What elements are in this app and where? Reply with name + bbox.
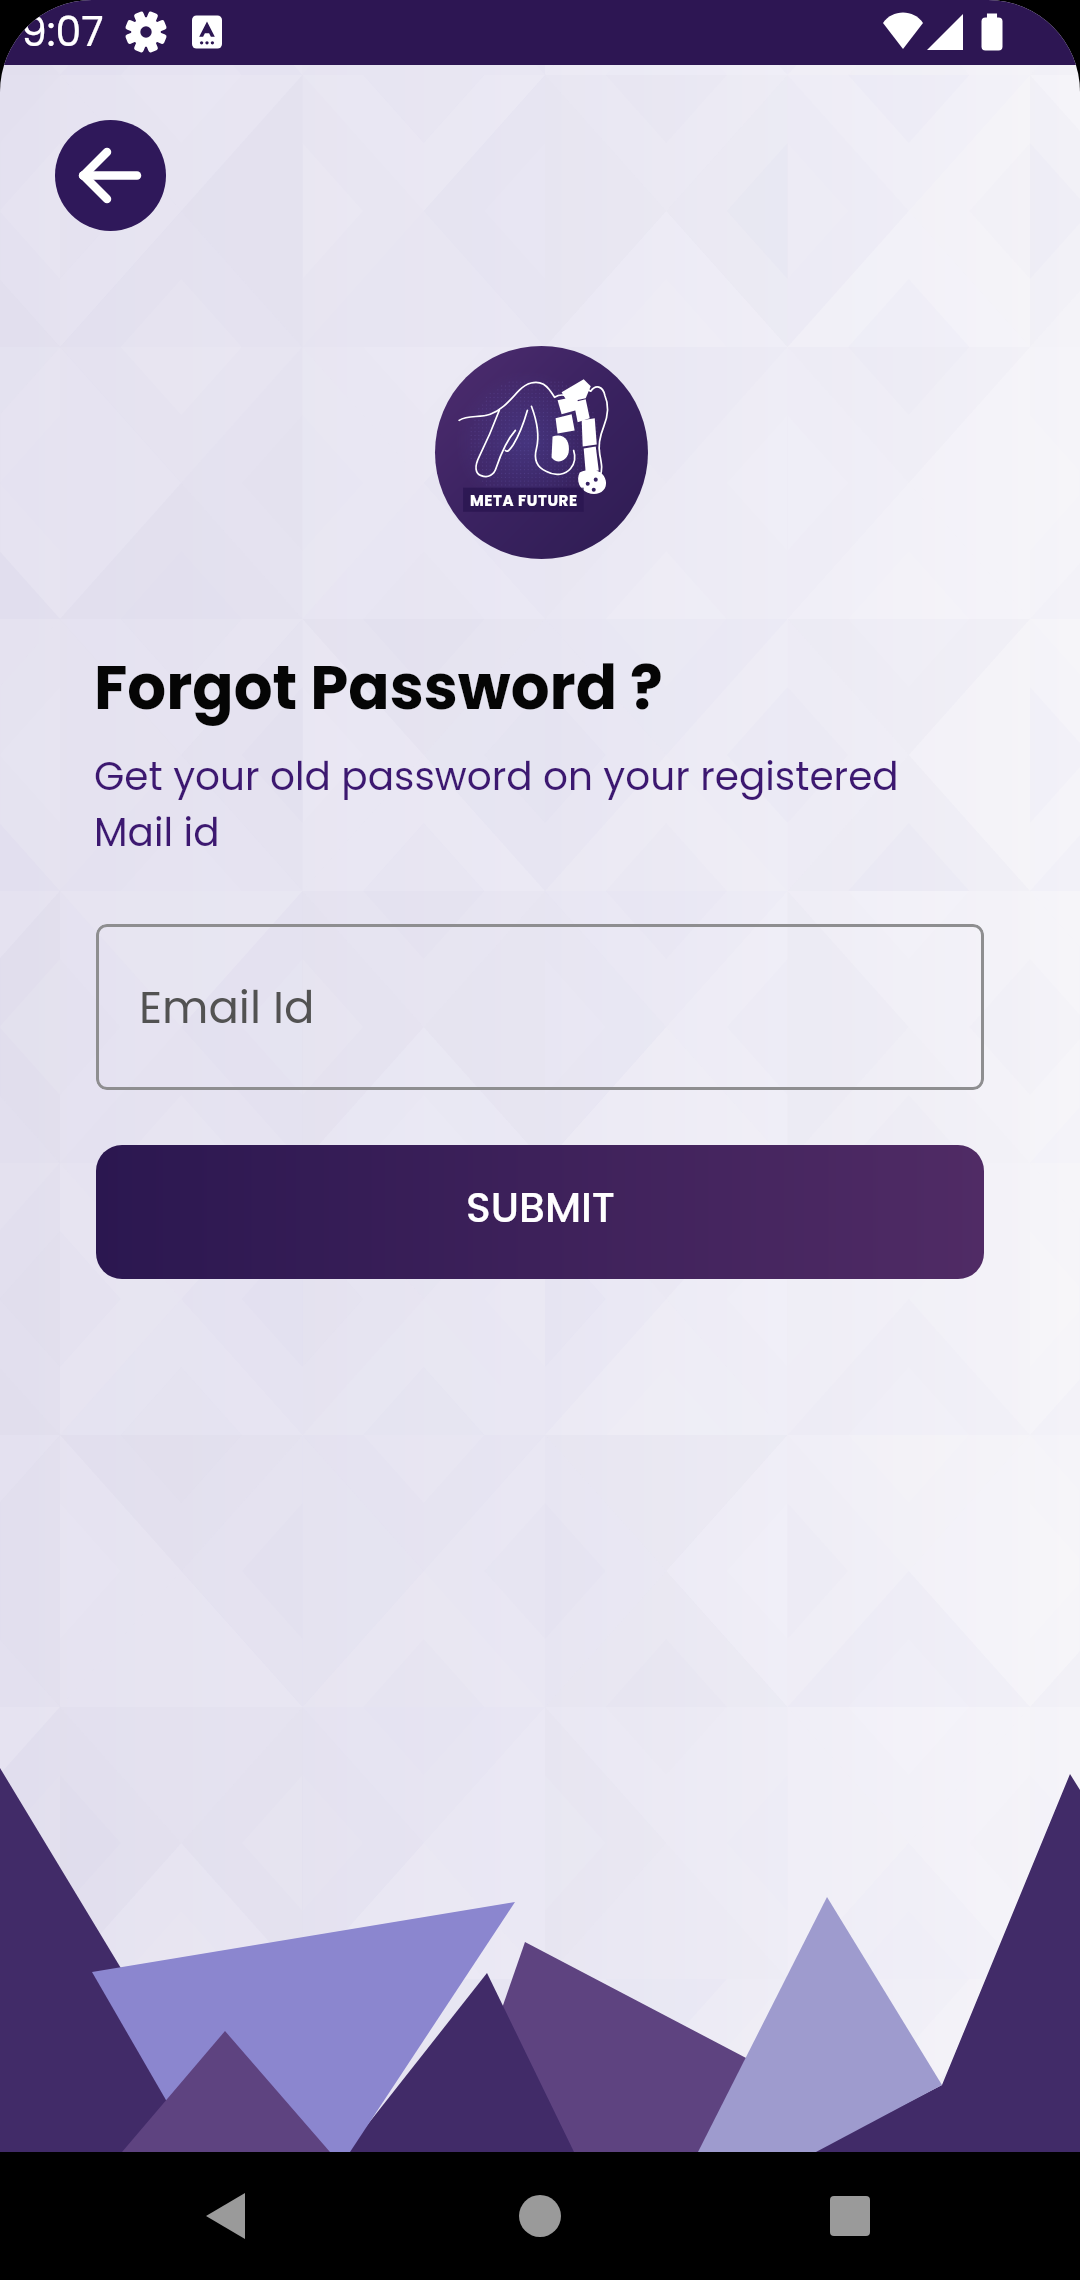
staticText: Get your old password on your registered… — [94, 749, 899, 860]
staticText: META FUTURE — [470, 490, 578, 511]
button[interactable]: Email Id — [96, 924, 984, 1090]
staticText: Email Id — [139, 976, 315, 1039]
staticText: 9:07 — [21, 3, 104, 60]
staticText: SUBMIT — [466, 1179, 615, 1236]
button[interactable]: Back — [55, 120, 166, 231]
staticText: Forgot Password ? — [94, 645, 663, 730]
button[interactable]: SUBMIT — [96, 1145, 984, 1279]
